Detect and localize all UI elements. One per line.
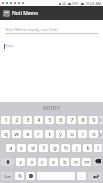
- button[interactable]: u: [67, 130, 76, 138]
- staticText: 6: [59, 116, 63, 124]
- staticText: 99%: [72, 2, 79, 6]
- button[interactable]: b: [60, 158, 69, 166]
- button[interactable]: Memo: [4, 11, 9, 16]
- staticText: 4G: [62, 2, 67, 6]
- button[interactable]: 9: [89, 116, 98, 124]
- staticText: Text: [5, 43, 13, 49]
- staticText: 5: [48, 116, 52, 124]
- button[interactable]: 6: [56, 116, 65, 124]
- staticText: 9: [92, 116, 96, 124]
- staticText: d: [31, 144, 35, 152]
- staticText: y: [59, 130, 62, 138]
- button[interactable]: .: [77, 172, 86, 180]
- button[interactable]: o: [89, 130, 98, 138]
- button[interactable]: 2: [12, 116, 21, 124]
- button[interactable]: 4: [34, 116, 43, 124]
- button[interactable]: [26, 172, 35, 180]
- staticText: Noti Memo: [12, 10, 39, 17]
- button[interactable]: h: [61, 144, 70, 152]
- button[interactable]: r: [34, 130, 43, 138]
- staticText: 3: [26, 116, 30, 124]
- button[interactable]: c: [38, 158, 47, 166]
- button[interactable]: y: [56, 130, 65, 138]
- staticText: Sym: [4, 174, 11, 179]
- button[interactable]: k: [83, 144, 92, 152]
- button[interactable]: q: [1, 130, 10, 138]
- button[interactable]: 5: [45, 116, 54, 124]
- staticText: j: [76, 144, 78, 152]
- button[interactable]: [93, 158, 102, 166]
- button[interactable]: m: [82, 158, 91, 166]
- button[interactable]: z: [16, 158, 25, 166]
- staticText: v: [52, 158, 55, 166]
- button[interactable]: s: [17, 144, 26, 152]
- staticText: w: [14, 130, 19, 138]
- button[interactable]: x: [27, 158, 36, 166]
- button[interactable]: i: [78, 130, 87, 138]
- button[interactable]: d: [28, 144, 37, 152]
- staticText: l: [97, 144, 99, 152]
- staticText: n: [74, 158, 78, 166]
- button[interactable]: 1: [1, 116, 10, 124]
- staticText: e: [26, 130, 30, 138]
- button[interactable]: a: [6, 144, 15, 152]
- button[interactable]: 0: [100, 116, 102, 124]
- staticText: o: [92, 130, 96, 138]
- staticText: a: [9, 144, 13, 152]
- staticText: b: [63, 158, 67, 166]
- button[interactable]: [88, 172, 102, 180]
- staticText: t: [48, 130, 51, 138]
- staticText: r: [37, 130, 40, 138]
- staticText: Title (When empty, use Text): [5, 27, 58, 32]
- staticText: h: [64, 144, 68, 152]
- staticText: c: [41, 158, 44, 166]
- button[interactable]: 8: [78, 116, 87, 124]
- staticText: 2: [15, 116, 19, 124]
- staticText: k: [86, 144, 90, 152]
- staticText: 8: [81, 116, 85, 124]
- staticText: NOTIFY: [43, 105, 61, 111]
- button[interactable]: g: [50, 144, 59, 152]
- button[interactable]: j: [72, 144, 81, 152]
- button[interactable]: n: [71, 158, 80, 166]
- staticText: u: [70, 130, 74, 138]
- staticText: 1: [4, 116, 8, 124]
- staticText: 10:54 AM: [85, 1, 102, 6]
- staticText: i: [82, 130, 84, 138]
- staticText: 4: [37, 116, 41, 124]
- staticText: z: [19, 158, 22, 166]
- staticText: p: [100, 130, 102, 138]
- staticText: s: [20, 144, 23, 152]
- staticText: .: [81, 172, 83, 180]
- button[interactable]: t: [45, 130, 54, 138]
- button[interactable]: e: [23, 130, 32, 138]
- button[interactable]: v: [49, 158, 58, 166]
- button[interactable]: [1, 158, 14, 166]
- button[interactable]: 7: [67, 116, 76, 124]
- staticText: %: [18, 173, 22, 179]
- button[interactable]: 3: [23, 116, 32, 124]
- button[interactable]: f: [39, 144, 48, 152]
- button[interactable]: l: [94, 144, 102, 152]
- staticText: x: [30, 158, 34, 166]
- button[interactable]: p: [100, 130, 102, 138]
- button[interactable]: Sym: [1, 172, 13, 180]
- button[interactable]: w: [12, 130, 21, 138]
- staticText: f: [43, 144, 45, 152]
- staticText: g: [53, 144, 57, 152]
- staticText: 7: [70, 116, 74, 124]
- staticText: 0: [100, 116, 102, 124]
- staticText: m: [84, 158, 90, 166]
- staticText: q: [4, 130, 8, 138]
- button[interactable]: %: [15, 172, 24, 180]
